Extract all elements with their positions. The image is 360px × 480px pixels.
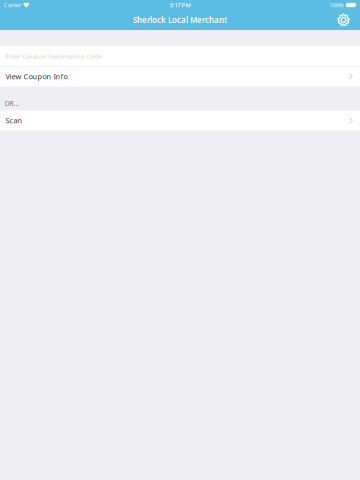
staticText: OR...	[4, 99, 19, 108]
button[interactable]: Scan	[0, 110, 360, 130]
staticText: 3:17 PM	[169, 1, 190, 9]
button[interactable]: Settings	[334, 10, 353, 29]
button[interactable]: View Coupon Info	[0, 66, 360, 86]
staticText: Scan	[5, 115, 22, 125]
staticText: Sherlock Local Merchant	[133, 15, 227, 25]
staticText: View Coupon Info	[5, 71, 67, 81]
staticText: 100%	[330, 1, 344, 9]
staticText: Carrier	[4, 1, 21, 9]
button[interactable]: Enter Coupon Redemption Code	[0, 46, 360, 66]
staticText: Enter Coupon Redemption Code	[5, 52, 101, 60]
